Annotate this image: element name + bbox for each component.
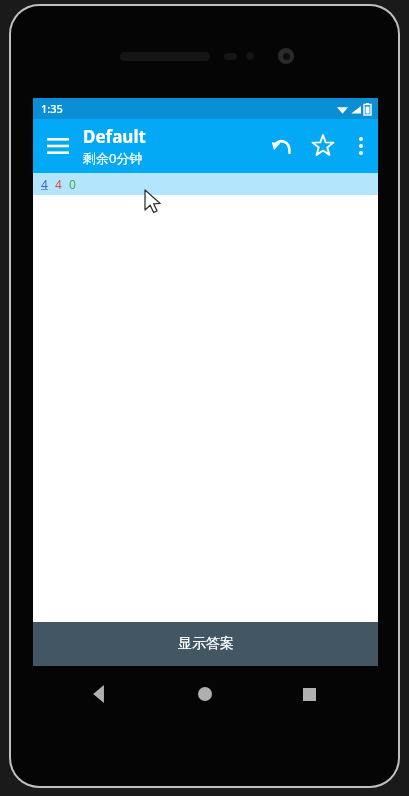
button[interactable]: More options bbox=[344, 119, 378, 173]
button[interactable]: Undo bbox=[260, 119, 302, 173]
button[interactable]: Mark bbox=[302, 119, 344, 173]
button[interactable]: Open navigation drawer bbox=[33, 119, 83, 173]
button[interactable]: 0 bbox=[69, 176, 76, 192]
button[interactable]: 显示答案 bbox=[33, 622, 378, 666]
button[interactable]: 4 bbox=[41, 176, 48, 192]
staticText: Default bbox=[83, 125, 146, 148]
staticText: 剩余0分钟 bbox=[83, 149, 143, 167]
button[interactable]: Back bbox=[80, 674, 120, 714]
staticText: 显示答案 bbox=[178, 635, 234, 653]
button[interactable]: 4 bbox=[55, 176, 62, 192]
staticText: 1:35 bbox=[41, 101, 63, 116]
button[interactable]: Recent apps bbox=[289, 674, 329, 714]
button[interactable]: Home bbox=[185, 674, 225, 714]
